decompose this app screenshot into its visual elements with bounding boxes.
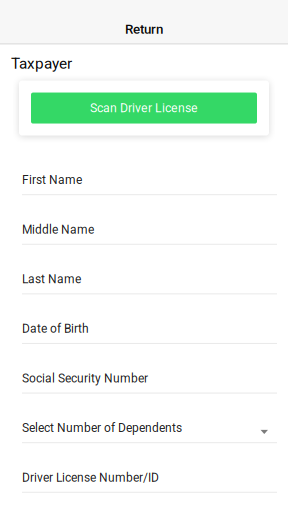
button[interactable]: First Name xyxy=(22,146,277,195)
button[interactable]: Date of Birth xyxy=(22,294,277,344)
button[interactable]: Scan Driver License xyxy=(31,93,257,124)
staticText: Return xyxy=(125,21,163,37)
button[interactable]: Select Number of Dependents xyxy=(22,394,277,443)
staticText: Social Security Number xyxy=(22,371,148,385)
staticText: Driver License Number/ID xyxy=(22,470,159,485)
button[interactable]: Middle Name xyxy=(22,195,277,245)
staticText: Last Name xyxy=(22,272,81,286)
button[interactable]: Social Security Number xyxy=(22,344,277,394)
staticText: Scan Driver License xyxy=(90,101,198,115)
button[interactable]: Return xyxy=(0,21,288,37)
staticText: Date of Birth xyxy=(22,322,89,336)
staticText: Taxpayer xyxy=(11,55,72,73)
button[interactable]: Driver License Number/ID xyxy=(22,443,277,493)
staticText: First Name xyxy=(22,173,82,187)
staticText: Select Number of Dependents xyxy=(22,421,182,435)
button[interactable]: Last Name xyxy=(22,245,277,294)
staticText: Middle Name xyxy=(22,222,94,237)
